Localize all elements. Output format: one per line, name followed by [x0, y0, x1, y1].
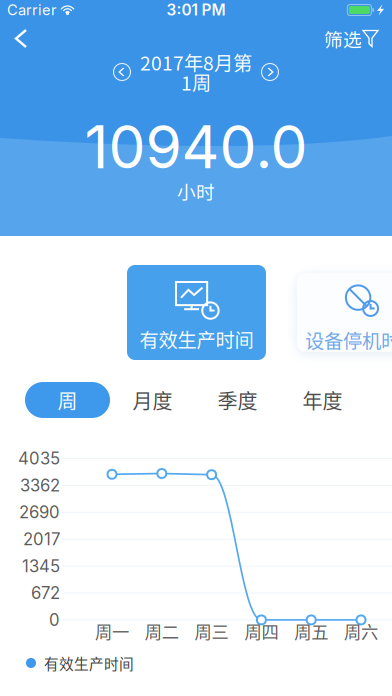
- staticText: 季度: [217, 385, 257, 414]
- staticText: 小时: [177, 177, 215, 204]
- button[interactable]: Previous week: [107, 57, 137, 87]
- button[interactable]: 年度: [280, 382, 365, 418]
- button[interactable]: 周: [25, 382, 110, 418]
- staticText: 月度: [132, 385, 172, 414]
- staticText: 周一: [95, 618, 129, 643]
- staticText: 周三: [195, 618, 229, 643]
- staticText: 0: [49, 610, 60, 630]
- staticText: 3:01 PM: [166, 1, 225, 19]
- staticText: 3362: [20, 475, 60, 495]
- button[interactable]: Next week: [255, 57, 285, 87]
- staticText: 4035: [18, 448, 60, 469]
- button[interactable]: 月度: [110, 382, 195, 418]
- button[interactable]: 筛选: [314, 17, 392, 60]
- staticText: 有效生产时间: [139, 325, 253, 353]
- staticText: 1周: [181, 68, 211, 96]
- button[interactable]: 季度: [195, 382, 280, 418]
- staticText: 周二: [145, 618, 179, 643]
- staticText: 2017: [23, 529, 60, 549]
- staticText: 1345: [22, 556, 60, 576]
- staticText: 672: [31, 583, 60, 603]
- staticText: 周: [57, 385, 77, 414]
- staticText: 2017年8月第: [140, 48, 252, 76]
- staticText: 周四: [244, 618, 278, 643]
- staticText: Carrier: [7, 1, 57, 19]
- staticText: 设备停机时间: [305, 326, 392, 354]
- button[interactable]: 有效生产时间: [127, 265, 266, 360]
- staticText: 有效生产时间: [44, 652, 134, 674]
- staticText: 2690: [19, 502, 60, 522]
- staticText: 10940.0: [84, 111, 307, 182]
- button[interactable]: 设备停机时间: [297, 273, 392, 352]
- staticText: 筛选: [324, 25, 362, 52]
- staticText: 周六: [344, 618, 378, 643]
- button[interactable]: Back: [0, 20, 40, 57]
- staticText: 年度: [302, 385, 342, 414]
- staticText: 周五: [294, 618, 328, 643]
